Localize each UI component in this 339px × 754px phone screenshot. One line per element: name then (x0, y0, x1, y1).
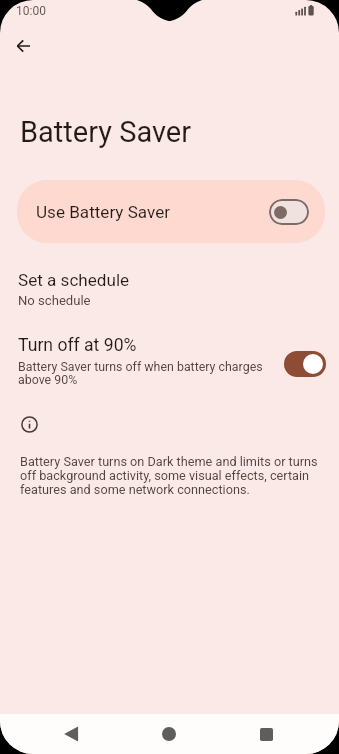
staticText: No schedule (18, 293, 91, 308)
staticText: Battery Saver (20, 115, 192, 149)
button[interactable]: Back (53, 716, 89, 752)
button[interactable]: Home (151, 716, 187, 752)
button[interactable]: Use Battery Saver (17, 180, 325, 243)
button[interactable]: Turn off at 90% (0, 329, 339, 393)
staticText: 10:00 (16, 4, 46, 18)
staticText: Battery Saver turns on Dark theme and li… (20, 454, 320, 497)
staticText: Turn off at 90% (18, 335, 137, 356)
button[interactable]: Turn off at 90% toggle, on (284, 351, 326, 377)
button[interactable]: Set a schedule (0, 264, 339, 314)
button[interactable]: Use Battery Saver toggle, off (269, 199, 309, 225)
other: Information (21, 416, 38, 433)
button[interactable]: Recent apps (248, 716, 284, 752)
staticText: Set a schedule (18, 270, 130, 290)
button[interactable]: Back (3, 26, 43, 66)
staticText: Battery Saver turns off when battery cha… (18, 359, 275, 387)
staticText: Use Battery Saver (36, 202, 171, 222)
